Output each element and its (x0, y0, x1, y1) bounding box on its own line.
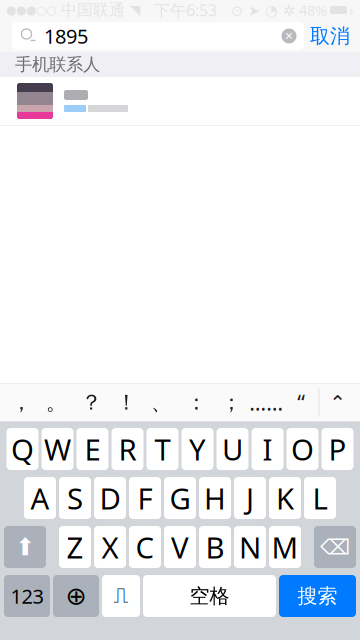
staticText: D (99, 478, 120, 517)
button[interactable]: A (24, 477, 56, 519)
button[interactable]: ； (214, 383, 249, 421)
button[interactable]: H (199, 477, 231, 519)
staticText: ⌫ (320, 535, 350, 559)
button[interactable]: Space (143, 575, 276, 617)
button[interactable]: U (216, 428, 248, 470)
button[interactable]: 取消 (304, 21, 356, 51)
button[interactable]: Numbers (4, 575, 50, 617)
staticText: S (67, 478, 83, 517)
button[interactable]: ： (179, 383, 214, 421)
staticText: V (171, 527, 189, 566)
button[interactable]: Shift (4, 526, 46, 568)
button[interactable]: T (146, 428, 178, 470)
button[interactable]: X (94, 526, 126, 568)
staticText: L (312, 478, 327, 517)
button[interactable]: S (59, 477, 91, 519)
staticText: Z (66, 527, 83, 566)
staticText: ， (11, 389, 32, 416)
staticText: 空格 (189, 584, 229, 608)
button[interactable]: O (286, 428, 318, 470)
staticText: F (137, 478, 152, 517)
button[interactable]: Search (279, 575, 356, 617)
staticText: ⊕ (65, 582, 86, 610)
staticText: ⎍ (113, 586, 128, 606)
button[interactable]: Dictation (102, 575, 140, 617)
staticText: “ (297, 388, 305, 417)
staticText: 搜索 (297, 584, 337, 608)
staticText: H (204, 478, 226, 517)
button[interactable]: ！ (109, 383, 144, 421)
staticText: ！ (116, 389, 137, 416)
staticText: E (84, 429, 100, 468)
staticText: 下午6:53 (154, 0, 217, 21)
button[interactable]: W (41, 428, 73, 470)
button[interactable]: B (199, 526, 231, 568)
button[interactable]: V (164, 526, 196, 568)
staticText: › (349, 0, 354, 20)
staticText: ✕ (284, 30, 293, 42)
staticText: O (291, 429, 314, 468)
button[interactable]: E (76, 428, 108, 470)
button[interactable]: G (164, 477, 196, 519)
button[interactable]: Y (181, 428, 213, 470)
staticText: M (271, 527, 298, 566)
button[interactable]: “ (284, 383, 319, 421)
staticText: ●●●○○ (6, 3, 56, 17)
staticText: ⬆ (15, 533, 35, 561)
staticText: Y (189, 429, 206, 468)
staticText: W (44, 429, 71, 468)
button[interactable]: P (321, 428, 353, 470)
staticText: ⊙ ➤ ◔ ✲ 48% (231, 0, 327, 20)
button[interactable]: …… (249, 383, 284, 421)
staticText: A (30, 478, 49, 517)
staticText: B (205, 527, 224, 566)
button[interactable]: I (251, 428, 283, 470)
staticText: X (101, 527, 118, 566)
staticText: 、 (151, 389, 172, 416)
button[interactable]: R (111, 428, 143, 470)
button[interactable]: K (269, 477, 301, 519)
staticText: 手机联系人 (15, 54, 100, 75)
staticText: ⌃ (329, 391, 346, 414)
button[interactable]: 。 (39, 383, 74, 421)
staticText: Q (11, 429, 34, 468)
staticText: 123 (10, 583, 43, 609)
button[interactable]: Switch keyboard (53, 575, 99, 617)
staticText: C (135, 527, 154, 566)
staticText: R (118, 429, 136, 468)
button[interactable]: ， (4, 383, 39, 421)
button[interactable]: Z (59, 526, 91, 568)
staticText: N (239, 527, 261, 566)
button[interactable]: Clear text (274, 22, 304, 50)
button[interactable]: C (129, 526, 161, 568)
button[interactable]: D (94, 477, 126, 519)
button[interactable]: M (269, 526, 301, 568)
staticText: J (246, 478, 254, 517)
staticText: ◥ (130, 2, 140, 17)
staticText: 。 (46, 389, 67, 416)
button[interactable]: Delete (314, 526, 356, 568)
staticText: P (328, 429, 346, 468)
staticText: ： (186, 389, 207, 416)
staticText: U (222, 429, 243, 468)
staticText: G (169, 478, 190, 517)
button[interactable]: J (234, 477, 266, 519)
button[interactable]: 、 (144, 383, 179, 421)
staticText: I (262, 429, 272, 468)
button[interactable]: L (304, 477, 336, 519)
button[interactable]: F (129, 477, 161, 519)
button[interactable]: Q (6, 428, 38, 470)
staticText: ； (221, 389, 242, 416)
staticText: T (154, 429, 170, 468)
staticText: 取消 (310, 24, 350, 48)
staticText: 1895 (44, 23, 88, 49)
button[interactable]: Hide punctuation bar (319, 383, 356, 421)
staticText: …… (249, 388, 283, 417)
staticText: 中国联通 (56, 0, 130, 20)
button[interactable]: ？ (74, 383, 109, 421)
staticText: K (276, 478, 294, 517)
staticText: ？ (81, 389, 102, 416)
button[interactable]: N (234, 526, 266, 568)
button[interactable] (0, 77, 360, 125)
